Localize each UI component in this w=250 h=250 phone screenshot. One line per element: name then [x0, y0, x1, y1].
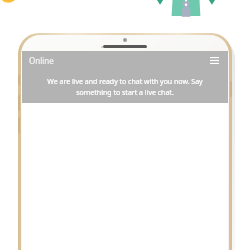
- button[interactable]: We are live and ready to chat with you n…: [22, 70, 228, 103]
- button[interactable]: Menu: [208, 54, 221, 67]
- staticText: We are live and ready to chat with you n…: [34, 77, 216, 97]
- button[interactable]: Online: [22, 51, 228, 70]
- staticText: Online: [29, 55, 54, 66]
